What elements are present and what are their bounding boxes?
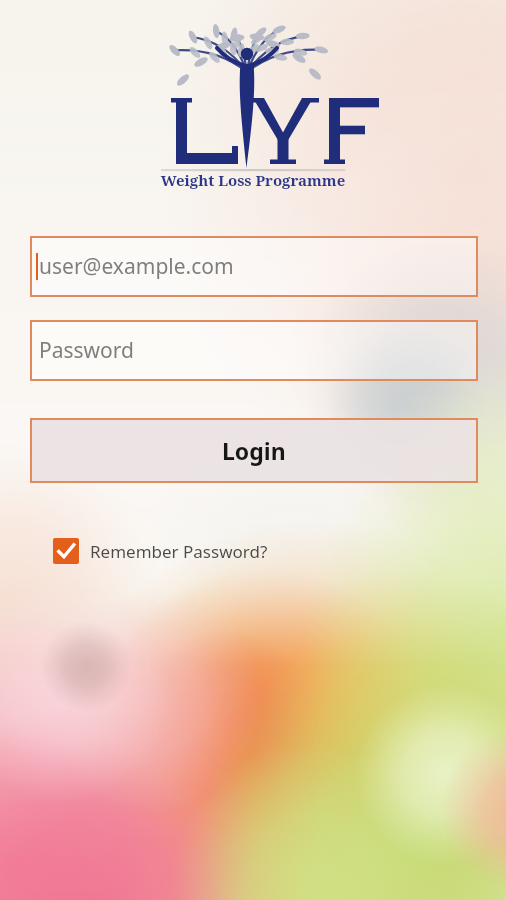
button[interactable]: Password [30, 320, 478, 381]
staticText: user@example.com [39, 252, 234, 281]
other: Remember Password checkbox [53, 538, 79, 564]
button[interactable]: user@example.com [30, 236, 478, 297]
staticText: Login [222, 435, 286, 466]
staticText: Weight Loss Programme [0, 170, 506, 194]
staticText: Remember Password? [90, 540, 268, 563]
button[interactable]: Login [30, 418, 478, 483]
staticText: Password [39, 336, 134, 365]
button[interactable]: Remember Password checkbox [53, 532, 298, 570]
